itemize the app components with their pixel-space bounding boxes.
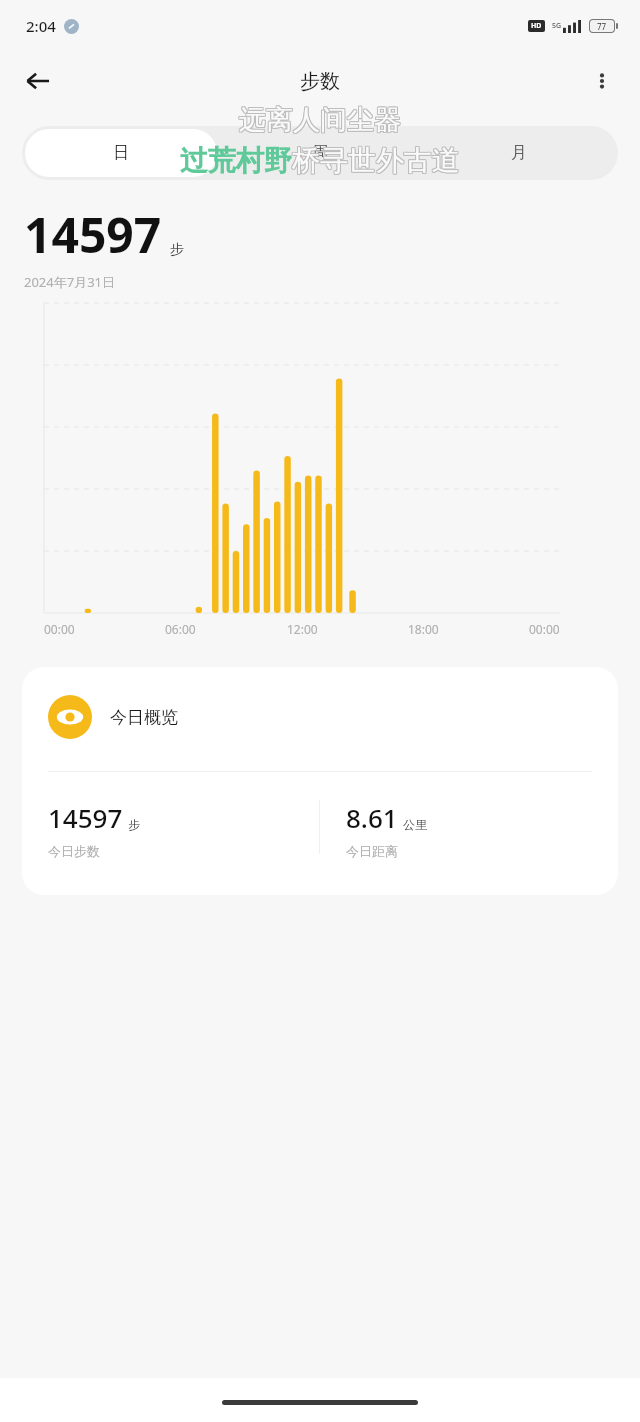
staticText: 步数 xyxy=(300,69,340,94)
button[interactable]: 日 xyxy=(25,129,217,177)
staticText: 公里 xyxy=(403,817,427,832)
staticText: 过荒村野 xyxy=(180,143,292,178)
staticText: 步 xyxy=(170,241,184,259)
staticText: 远离人间尘器 xyxy=(240,102,402,136)
staticText: 远离人间尘器 xyxy=(239,102,401,136)
staticText: 14597 xyxy=(48,800,123,835)
staticText: 月 xyxy=(511,143,527,163)
staticText: 桥寻世外古道 xyxy=(291,142,459,177)
staticText: HD xyxy=(531,21,542,31)
staticText: 14597 xyxy=(24,202,162,267)
button[interactable]: More options xyxy=(576,55,628,107)
staticText: 远离人间尘器 xyxy=(240,104,402,138)
staticText: 2:04 xyxy=(26,16,56,36)
staticText: 步 xyxy=(128,817,140,832)
staticText: 5G xyxy=(552,21,562,31)
staticText: 今日概览 xyxy=(110,707,178,728)
staticText: 远离人间尘器 xyxy=(238,103,400,137)
staticText: 桥寻世外古道 xyxy=(292,142,460,177)
button[interactable]: 周 xyxy=(223,129,416,177)
staticText: 桥寻世外古道 xyxy=(293,143,461,178)
staticText: 18:00 xyxy=(408,621,439,637)
button[interactable]: 月 xyxy=(422,129,615,177)
staticText: 远离人间尘器 xyxy=(238,104,400,138)
staticText: 桥寻世外古道 xyxy=(293,142,461,177)
staticText: 2024年7月31日 xyxy=(24,273,116,291)
staticText: 00:00 xyxy=(529,621,560,637)
staticText: 远离人间尘器 xyxy=(239,104,401,138)
staticText: 桥寻世外古道 xyxy=(291,144,459,179)
staticText: 周 xyxy=(312,143,328,163)
staticText: 日 xyxy=(113,143,129,163)
button[interactable]: Back xyxy=(12,55,64,107)
staticText: 桥寻世外古道 xyxy=(291,143,459,178)
staticText: 桥寻世外古道 xyxy=(293,144,461,179)
staticText: 8.61 xyxy=(346,800,398,835)
staticText: 桥寻世外古道 xyxy=(292,144,460,179)
staticText: 今日距离 xyxy=(346,843,398,859)
staticText: 远离人间尘器 xyxy=(240,103,402,137)
staticText: 远离人间尘器 xyxy=(239,103,401,137)
staticText: 今日步数 xyxy=(48,843,100,859)
staticText: 00:00 xyxy=(44,621,75,637)
button[interactable]: 今日概览 xyxy=(22,667,618,895)
staticText: 12:00 xyxy=(287,621,318,637)
staticText: 77 xyxy=(597,21,607,32)
staticText: 桥寻世外古道 xyxy=(292,143,460,178)
staticText: 远离人间尘器 xyxy=(238,102,400,136)
staticText: 06:00 xyxy=(165,621,196,637)
